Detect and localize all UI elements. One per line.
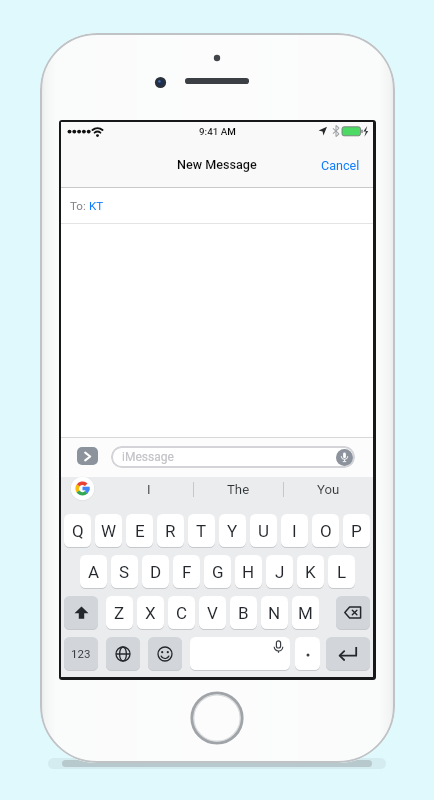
button[interactable]: G	[204, 555, 231, 588]
button[interactable]: W	[95, 514, 122, 547]
staticText: I	[292, 521, 297, 541]
button[interactable]: O	[312, 514, 339, 547]
staticText: New Message	[177, 157, 257, 172]
staticText: Cancel	[321, 158, 360, 173]
button[interactable]: D	[142, 555, 169, 588]
staticText: E	[135, 521, 145, 541]
button[interactable]	[190, 637, 290, 670]
staticText: H	[242, 562, 255, 582]
staticText: F	[182, 562, 192, 582]
staticText: J	[275, 562, 285, 582]
button[interactable]: Q	[64, 514, 91, 547]
staticText: U	[258, 521, 270, 541]
staticText: T	[196, 521, 207, 541]
staticText: KT	[89, 199, 104, 213]
button[interactable]: L	[328, 555, 355, 588]
button[interactable]: Y	[219, 514, 246, 547]
button[interactable]: The	[203, 473, 274, 505]
button[interactable]: 123	[64, 637, 98, 670]
button[interactable]: I	[113, 473, 184, 505]
button[interactable]	[111, 446, 355, 468]
button[interactable]: U	[250, 514, 277, 547]
staticText: Z	[114, 603, 125, 623]
staticText: G	[212, 562, 224, 582]
staticText: X	[145, 603, 156, 623]
button[interactable]: N	[261, 596, 288, 629]
staticText: W	[101, 521, 117, 541]
button[interactable]	[336, 596, 370, 629]
button[interactable]	[77, 447, 98, 465]
staticText: R	[165, 521, 176, 541]
staticText: To:	[70, 199, 89, 213]
button[interactable]: M	[292, 596, 319, 629]
button[interactable]: H	[235, 555, 262, 588]
button[interactable]: F	[173, 555, 200, 588]
button[interactable]	[336, 449, 353, 466]
button[interactable]: C	[168, 596, 195, 629]
staticText: You	[317, 482, 340, 497]
staticText: P	[351, 521, 362, 541]
button[interactable]: S	[111, 555, 138, 588]
button[interactable]	[70, 476, 95, 501]
button[interactable]: Z	[106, 596, 133, 629]
staticText: A	[88, 562, 100, 582]
button[interactable]: You	[293, 473, 364, 505]
staticText: The	[227, 482, 250, 497]
staticText: iMessage	[122, 450, 174, 464]
staticText: V	[207, 603, 218, 623]
button[interactable]: I	[281, 514, 308, 547]
staticText: O	[320, 521, 332, 541]
button[interactable]	[106, 637, 140, 670]
button[interactable]	[326, 637, 370, 670]
staticText: B	[238, 603, 249, 623]
button[interactable]: R	[157, 514, 184, 547]
button[interactable]: B	[230, 596, 257, 629]
staticText: D	[150, 562, 162, 582]
staticText: S	[119, 562, 130, 582]
button[interactable]: E	[126, 514, 153, 547]
button[interactable]	[192, 693, 242, 743]
staticText: 123	[71, 647, 91, 660]
button[interactable]: T	[188, 514, 215, 547]
button[interactable]: J	[266, 555, 293, 588]
button[interactable]	[148, 637, 182, 670]
staticText: M	[298, 603, 313, 623]
staticText: C	[176, 603, 188, 623]
staticText: N	[268, 603, 281, 623]
staticText: Y	[227, 521, 238, 541]
staticText: 9:41 AM	[199, 126, 236, 137]
button[interactable]: P	[343, 514, 370, 547]
staticText: I	[147, 482, 151, 497]
button[interactable]	[295, 637, 320, 670]
staticText: Q	[72, 521, 84, 541]
button[interactable]: V	[199, 596, 226, 629]
staticText: L	[337, 562, 347, 582]
button[interactable]	[70, 188, 190, 223]
button[interactable]: K	[297, 555, 324, 588]
button[interactable]	[64, 596, 98, 629]
button[interactable]: A	[80, 555, 107, 588]
button[interactable]: Cancel	[281, 150, 360, 180]
staticText: K	[305, 562, 316, 582]
button[interactable]: X	[137, 596, 164, 629]
